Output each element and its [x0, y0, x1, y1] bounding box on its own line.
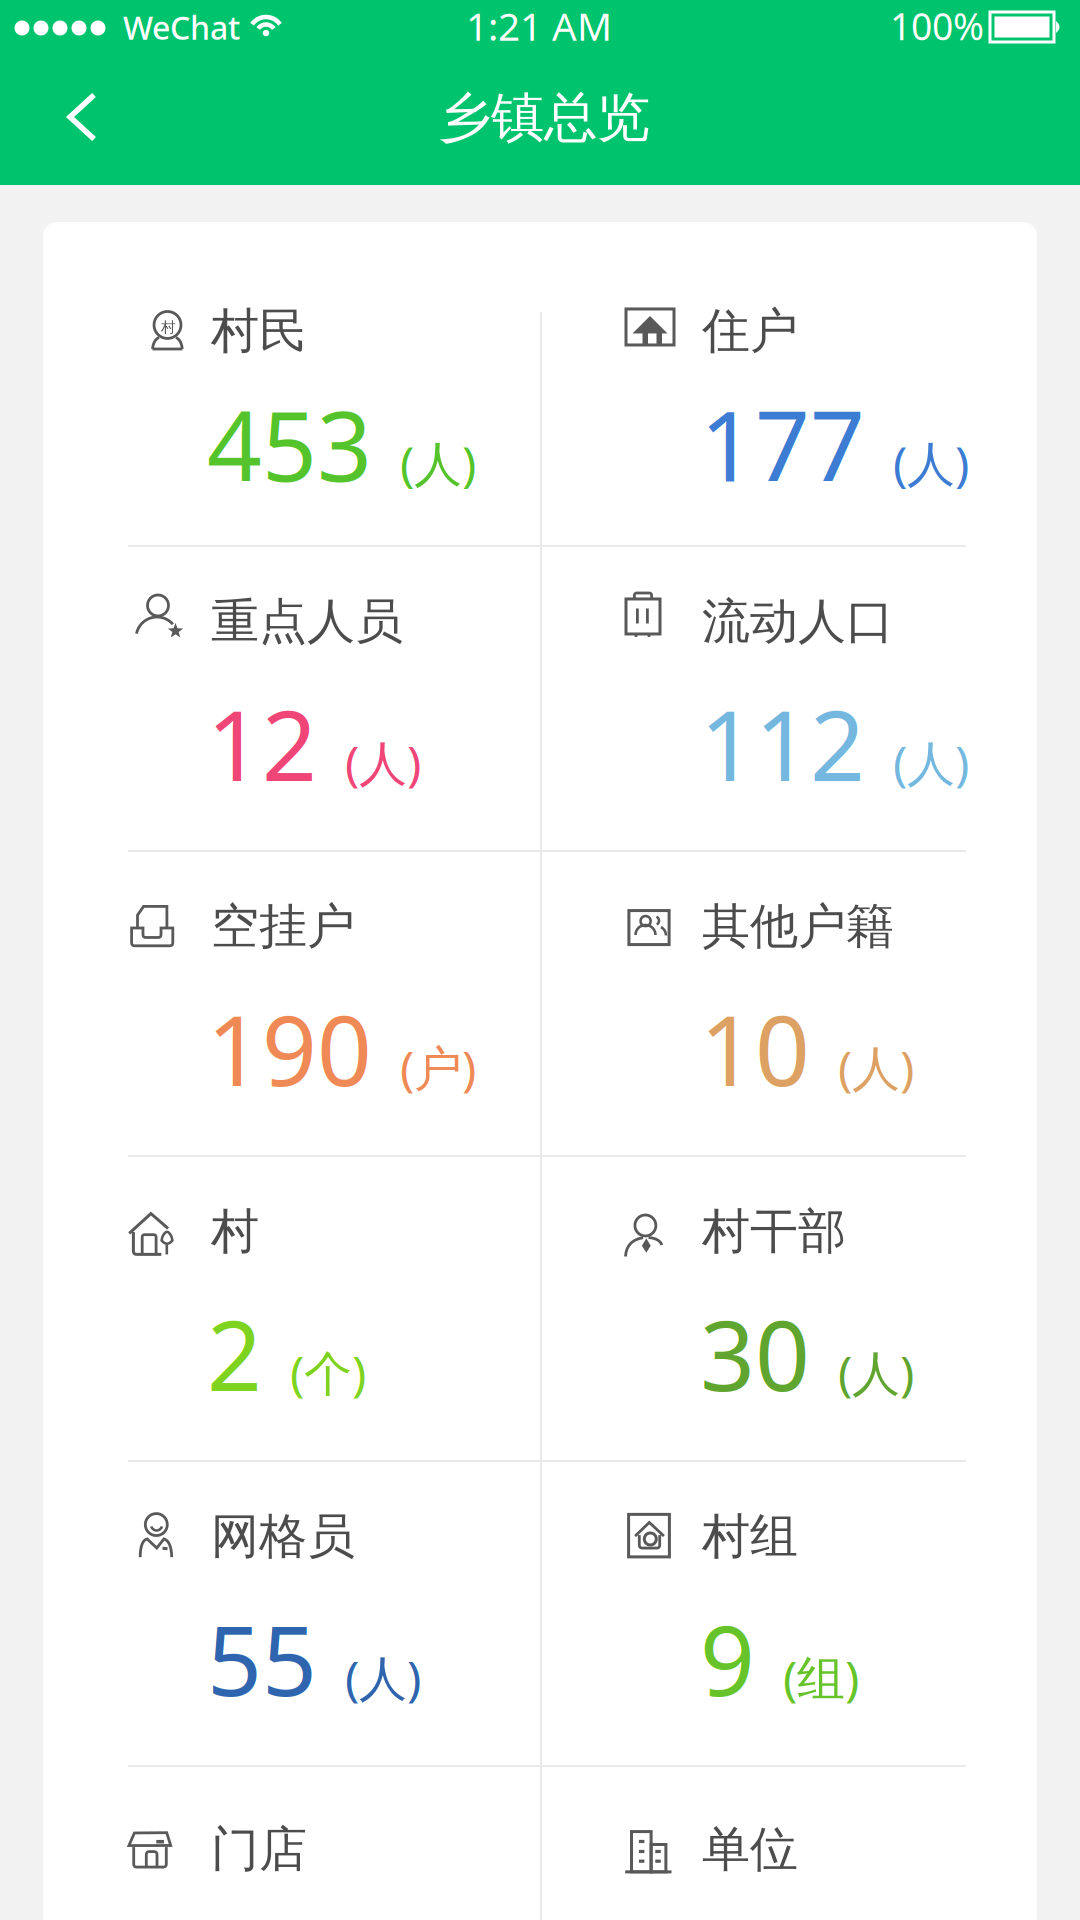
staticText: 55	[207, 1595, 317, 1722]
button[interactable]: 流动人口	[542, 545, 1037, 850]
staticText: 2	[207, 1290, 262, 1417]
button[interactable]: 村	[43, 1155, 540, 1460]
staticText: (人)	[345, 730, 421, 794]
staticText: (人)	[838, 1035, 914, 1099]
staticText: 12	[207, 680, 317, 807]
staticText: 30	[700, 1290, 810, 1417]
staticText: 单位	[702, 1820, 798, 1879]
staticText: 其他户籍	[702, 897, 894, 956]
staticText: 乡镇总览	[438, 85, 650, 150]
staticText: 100%	[890, 1, 984, 51]
staticText: 190	[207, 985, 372, 1112]
staticText: 村民	[211, 301, 307, 360]
button[interactable]: 网格员	[43, 1460, 540, 1765]
staticText: (组)	[783, 1645, 859, 1709]
staticText: 重点人员	[211, 592, 403, 651]
button[interactable]: 其他户籍	[542, 850, 1037, 1155]
staticText: 10	[700, 985, 810, 1112]
button[interactable]: 住户	[542, 222, 1037, 545]
staticText: 112	[700, 680, 865, 807]
staticText: (人)	[345, 1645, 421, 1709]
staticText: 村干部	[702, 1202, 846, 1261]
staticText: 1:21 AM	[466, 0, 612, 51]
staticText: (人)	[893, 431, 969, 495]
staticText: 177	[700, 380, 865, 508]
staticText: 门店	[211, 1820, 307, 1879]
staticText: (人)	[893, 730, 969, 794]
staticText: 网格员	[211, 1507, 355, 1566]
button[interactable]: 单位	[542, 1765, 1037, 1920]
button[interactable]: 重点人员	[43, 545, 540, 850]
staticText: (个)	[290, 1340, 366, 1404]
staticText: 流动人口	[702, 592, 894, 651]
staticText: 住户	[702, 301, 798, 360]
staticText: 村组	[702, 1507, 798, 1566]
button[interactable]: 村	[43, 222, 540, 545]
staticText: WeChat	[123, 6, 240, 48]
staticText: 9	[700, 1595, 755, 1722]
staticText: 村	[211, 1202, 259, 1261]
button[interactable]: 门店	[43, 1765, 540, 1920]
staticText: 空挂户	[211, 897, 355, 956]
staticText: 453	[207, 380, 372, 508]
staticText: 村	[161, 318, 176, 336]
staticText: (人)	[838, 1340, 914, 1404]
button[interactable]: 空挂户	[43, 850, 540, 1155]
button[interactable]: Back	[42, 81, 122, 153]
button[interactable]: 村干部	[542, 1155, 1037, 1460]
staticText: (户)	[400, 1035, 476, 1099]
button[interactable]: 村组	[542, 1460, 1037, 1765]
staticText: (人)	[400, 431, 476, 495]
